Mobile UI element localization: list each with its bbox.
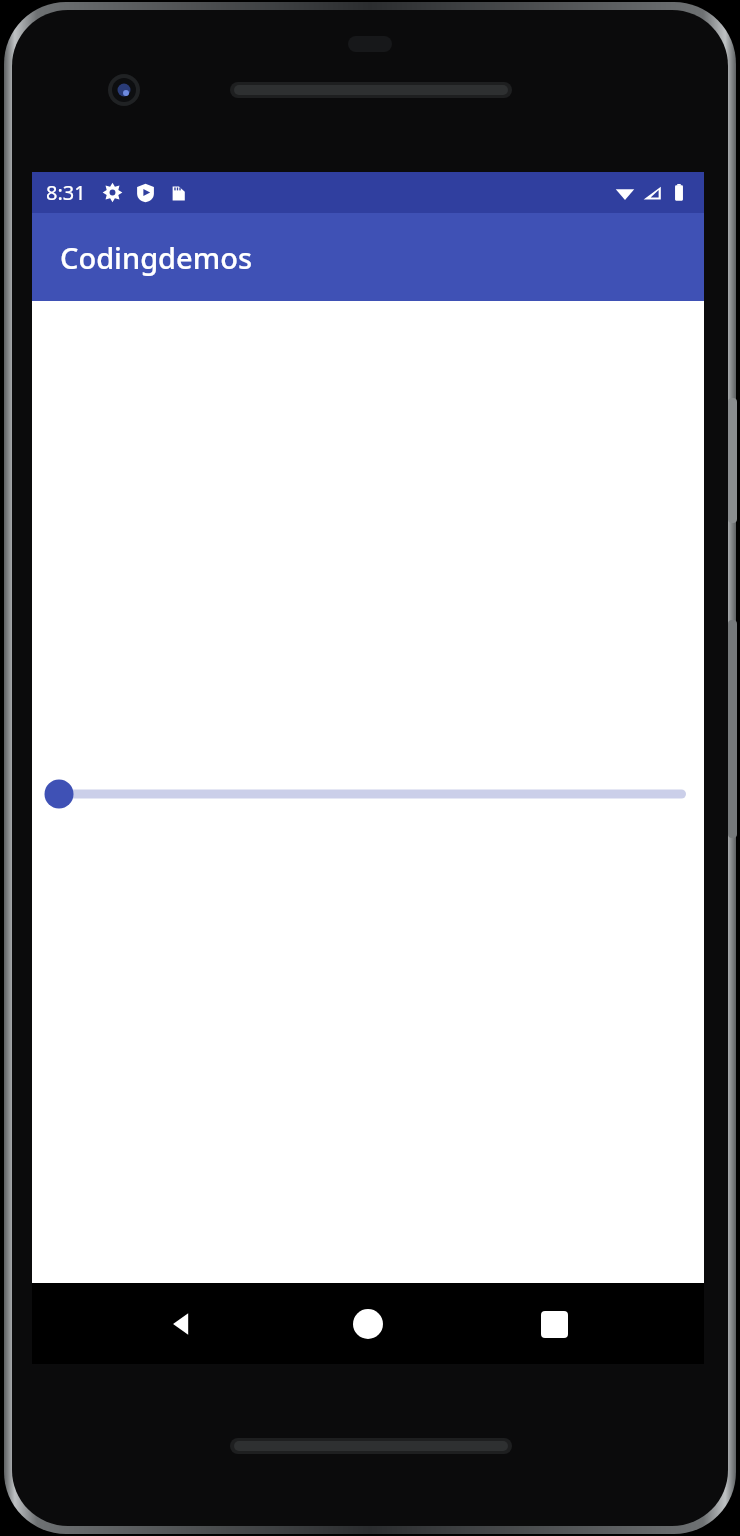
staticText: 8:31 [46,179,86,206]
button[interactable]: Recent apps [518,1288,590,1360]
staticText: Codingdemos [60,238,253,277]
button[interactable]: Back [146,1288,218,1360]
button[interactable] [32,770,704,818]
button[interactable]: Home [332,1288,404,1360]
